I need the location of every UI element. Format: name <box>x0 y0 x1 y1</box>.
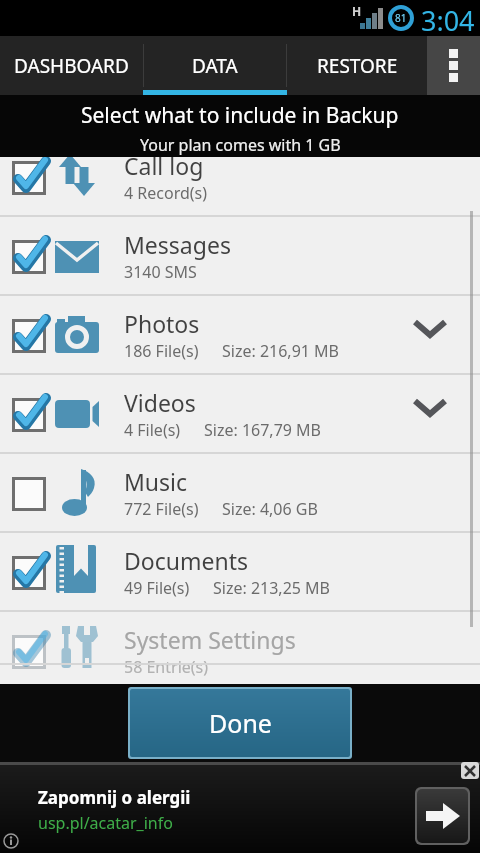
button[interactable] <box>461 762 479 779</box>
staticText: Size: 4,06 GB <box>222 498 318 520</box>
staticText: Size: 167,79 MB <box>204 419 322 441</box>
button[interactable]: Messages <box>0 217 480 296</box>
staticText: 4 Record(s) <box>124 182 208 204</box>
staticText: Messages <box>124 229 231 260</box>
staticText: Music <box>124 466 188 497</box>
button[interactable]: Videos <box>0 375 480 454</box>
staticText: Size: 216,91 MB <box>222 340 340 362</box>
button[interactable]: Done <box>130 689 350 757</box>
button[interactable]: System Settings <box>0 612 480 665</box>
staticText: Done <box>209 706 272 740</box>
staticText: H <box>352 3 362 19</box>
button[interactable]: DASHBOARD <box>0 36 143 95</box>
staticText: 186 File(s) <box>124 340 199 362</box>
button[interactable]: DATA <box>143 36 287 95</box>
staticText: 49 File(s) <box>124 577 190 599</box>
button[interactable]: RESTORE <box>287 36 427 95</box>
staticText: System Settings <box>124 624 296 655</box>
button[interactable]: Photos <box>0 296 480 375</box>
staticText: 58 Entrie(s) <box>124 656 209 678</box>
staticText: Documents <box>124 545 248 576</box>
staticText: Zapomnij o alergii <box>38 786 191 809</box>
staticText: DASHBOARD <box>14 53 129 79</box>
staticText: Videos <box>124 387 196 418</box>
button[interactable]: Call log <box>0 157 480 217</box>
staticText: 4 File(s) <box>124 419 181 441</box>
button[interactable] <box>427 36 480 95</box>
staticText: usp.pl/acatar_info <box>38 812 173 834</box>
staticText: 3140 SMS <box>124 261 197 283</box>
staticText: Call log <box>124 157 204 181</box>
button[interactable]: Music <box>0 454 480 533</box>
button[interactable]: Documents <box>0 533 480 612</box>
staticText: 3:04 <box>421 2 475 38</box>
staticText: Photos <box>124 308 200 339</box>
staticText: RESTORE <box>317 53 398 79</box>
staticText: Size: 213,25 MB <box>213 577 331 599</box>
staticText: Your plan comes with 1 GB <box>140 134 341 156</box>
staticText: DATA <box>192 53 238 79</box>
staticText: Select what to include in Backup <box>81 101 399 130</box>
button[interactable] <box>417 789 468 843</box>
staticText: 81 <box>395 11 407 25</box>
staticText: 772 File(s) <box>124 498 199 520</box>
